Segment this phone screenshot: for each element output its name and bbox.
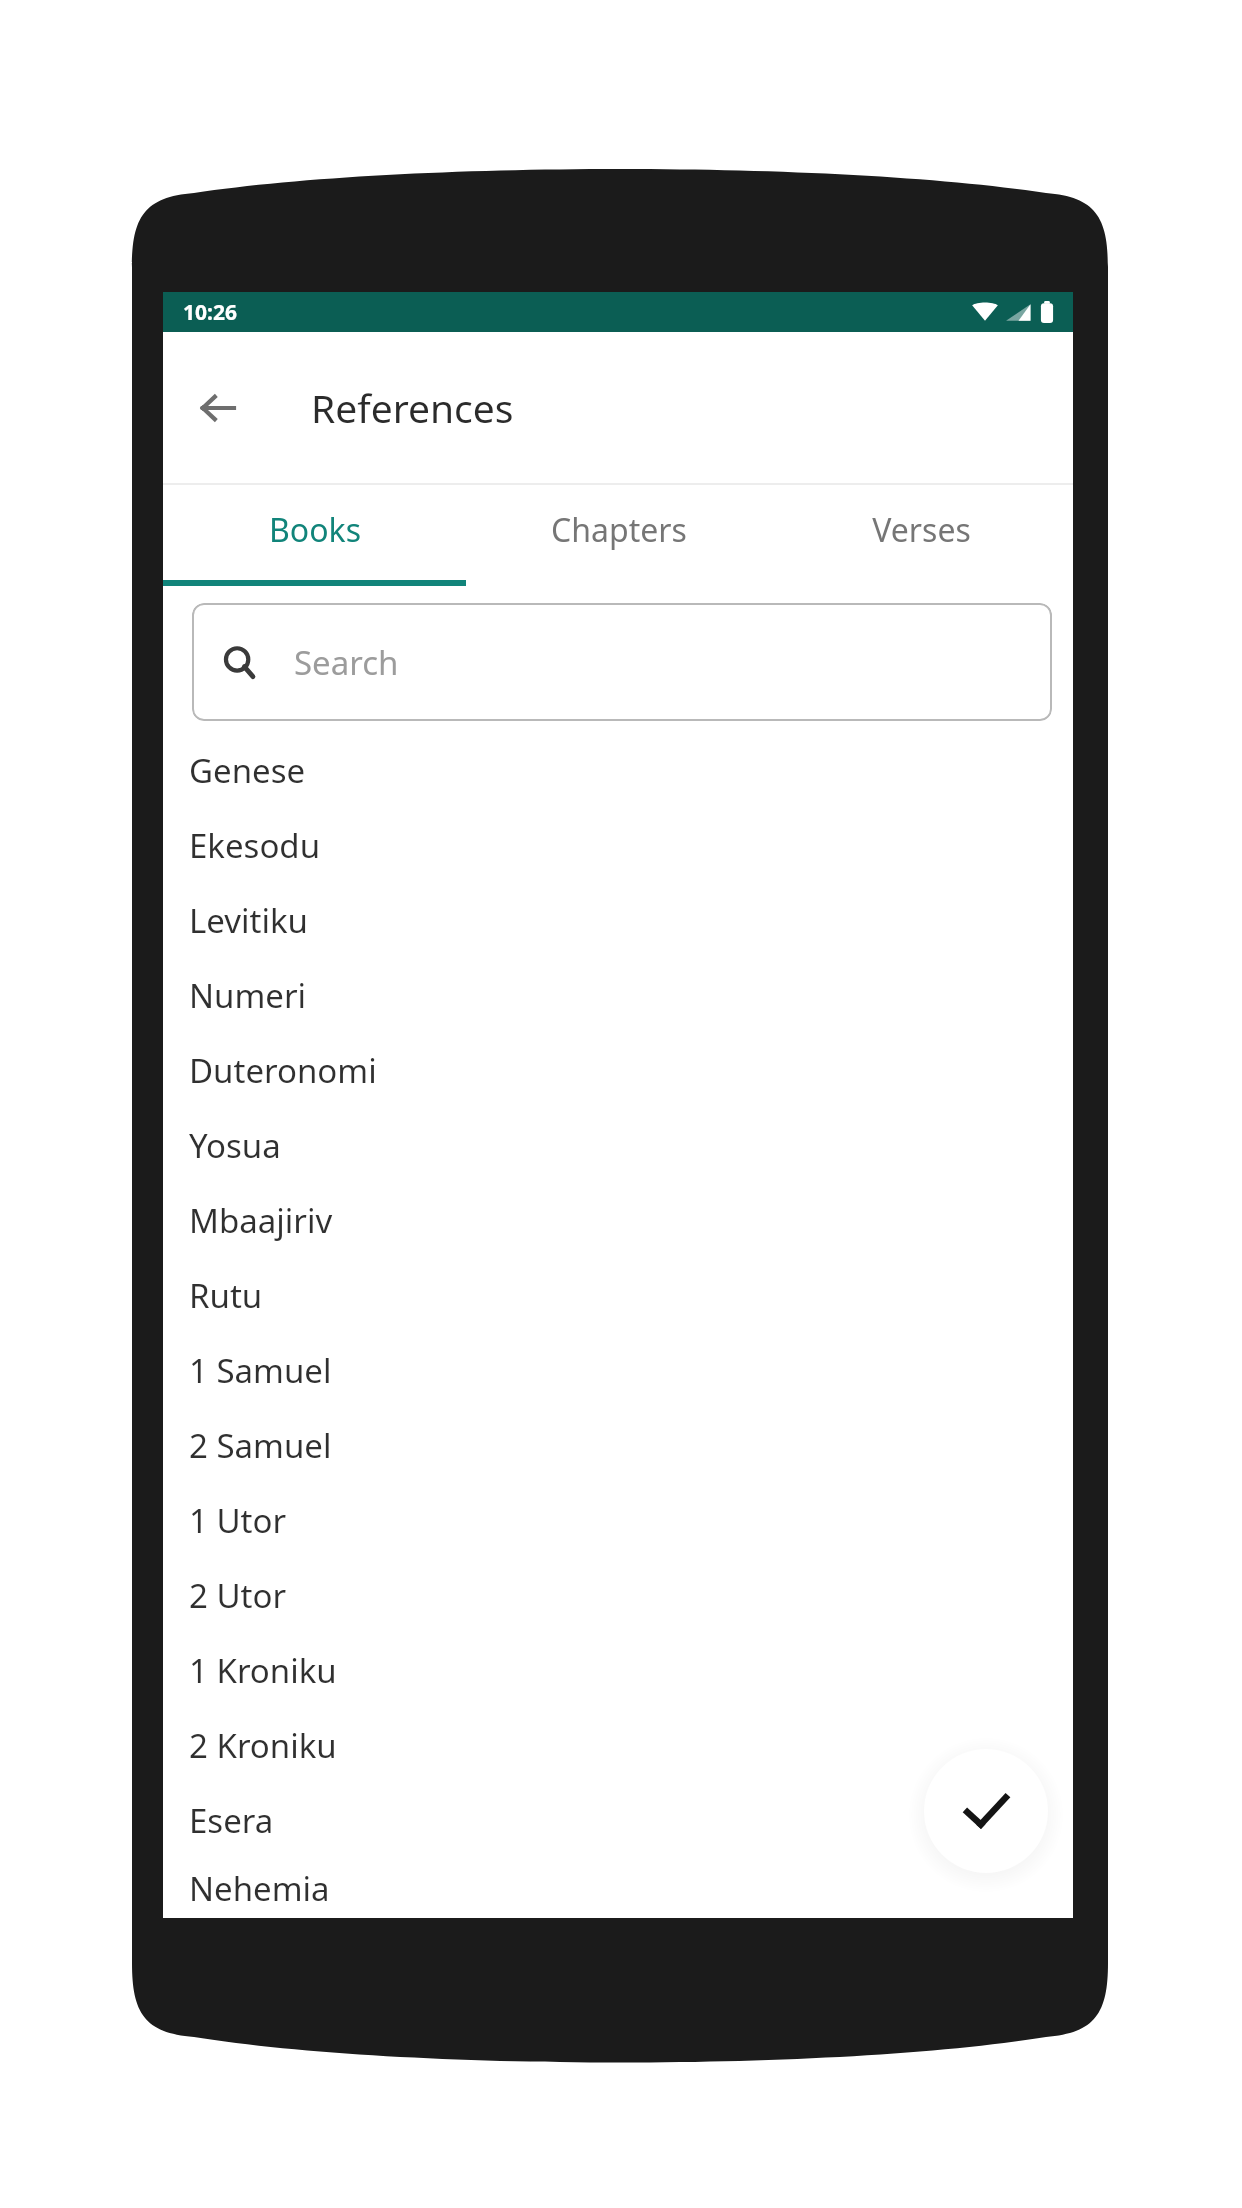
- staticText: 2 Utor: [189, 1573, 287, 1618]
- staticText: Books: [269, 508, 361, 552]
- staticText: Esera: [189, 1798, 274, 1843]
- staticText: 2 Kroniku: [189, 1723, 337, 1768]
- staticText: 2 Samuel: [189, 1423, 332, 1468]
- button[interactable]: Rutu: [163, 1258, 1073, 1333]
- staticText: Nehemia: [189, 1866, 330, 1911]
- button[interactable]: Ekesodu: [163, 808, 1073, 883]
- staticText: 1 Kroniku: [189, 1648, 337, 1693]
- button[interactable]: 1 Samuel: [163, 1333, 1073, 1408]
- staticText: 1 Utor: [189, 1498, 287, 1543]
- button[interactable]: Verses: [770, 485, 1073, 586]
- button[interactable]: Mbaajiriv: [163, 1183, 1073, 1258]
- staticText: Levitiku: [189, 898, 308, 943]
- button[interactable]: Levitiku: [163, 883, 1073, 958]
- button[interactable]: Books: [163, 485, 467, 586]
- button[interactable]: 2 Utor: [163, 1558, 1073, 1633]
- staticText: 10:26: [183, 298, 237, 327]
- staticText: 1 Samuel: [189, 1348, 332, 1393]
- button[interactable]: Esera: [163, 1783, 1073, 1858]
- button[interactable]: Chapters: [467, 485, 770, 586]
- staticText: Rutu: [189, 1273, 263, 1318]
- button[interactable]: Yosua: [163, 1108, 1073, 1183]
- staticText: Duteronomi: [189, 1048, 377, 1093]
- button[interactable]: 2 Samuel: [163, 1408, 1073, 1483]
- staticText: Ekesodu: [189, 823, 321, 868]
- staticText: Chapters: [551, 508, 687, 552]
- button[interactable]: Search: [192, 603, 1052, 721]
- button[interactable]: 1 Kroniku: [163, 1633, 1073, 1708]
- button[interactable]: Back: [185, 375, 251, 441]
- staticText: Mbaajiriv: [189, 1198, 333, 1243]
- staticText: Numeri: [189, 973, 307, 1018]
- staticText: Yosua: [189, 1123, 281, 1168]
- button[interactable]: Genese: [163, 733, 1073, 808]
- button[interactable]: Confirm: [924, 1749, 1048, 1873]
- staticText: References: [311, 381, 514, 434]
- button[interactable]: 1 Utor: [163, 1483, 1073, 1558]
- button[interactable]: Nehemia: [163, 1858, 1073, 1918]
- staticText: Genese: [189, 748, 306, 793]
- staticText: Search: [294, 640, 399, 685]
- staticText: Verses: [872, 508, 971, 552]
- button[interactable]: Duteronomi: [163, 1033, 1073, 1108]
- button[interactable]: Numeri: [163, 958, 1073, 1033]
- button[interactable]: 2 Kroniku: [163, 1708, 1073, 1783]
